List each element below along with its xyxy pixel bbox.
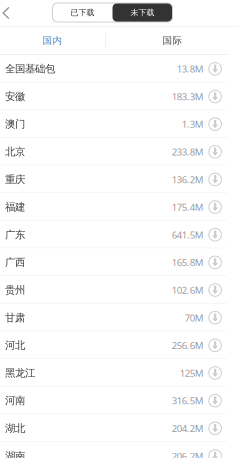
- button[interactable]: 河北: [0, 331, 239, 359]
- staticText: 256.6M: [172, 339, 204, 352]
- staticText: 175.4M: [172, 200, 204, 214]
- staticText: 甘肃: [5, 311, 25, 324]
- button[interactable]: 重庆: [0, 166, 239, 193]
- staticText: 黑龙江: [5, 366, 35, 379]
- staticText: 102.6M: [172, 283, 204, 297]
- staticText: 贵州: [5, 283, 25, 297]
- button[interactable]: 未下载: [112, 3, 172, 22]
- button[interactable]: 河南: [0, 387, 239, 414]
- staticText: 1.3M: [182, 118, 204, 131]
- staticText: 国内: [42, 34, 62, 47]
- staticText: 165.8M: [172, 256, 204, 269]
- staticText: 已下载: [70, 7, 94, 18]
- staticText: 全国基础包: [5, 62, 55, 75]
- button[interactable]: 黑龙江: [0, 359, 239, 387]
- button[interactable]: 福建: [0, 193, 239, 221]
- button[interactable]: 湖南: [0, 442, 239, 458]
- button[interactable]: 湖北: [0, 414, 239, 442]
- button[interactable]: 全国基础包: [0, 55, 239, 83]
- staticText: 136.2M: [172, 173, 204, 186]
- staticText: 福建: [5, 200, 25, 214]
- staticText: 641.5M: [172, 228, 204, 241]
- staticText: 澳门: [5, 118, 25, 131]
- button[interactable]: 贵州: [0, 276, 239, 304]
- staticText: 未下载: [130, 7, 154, 18]
- staticText: 河南: [5, 394, 25, 407]
- button[interactable]: 广东: [0, 221, 239, 248]
- staticText: 13.8M: [177, 62, 204, 75]
- button[interactable]: 广西: [0, 249, 239, 276]
- staticText: 湖北: [5, 422, 25, 435]
- button[interactable]: 国际: [106, 27, 239, 54]
- staticText: 北京: [5, 145, 25, 158]
- button[interactable]: 已下载: [52, 3, 112, 22]
- staticText: 国际: [162, 34, 182, 47]
- staticText: 204.2M: [172, 422, 204, 435]
- staticText: 河北: [5, 339, 25, 352]
- staticText: 233.8M: [172, 145, 204, 158]
- staticText: 206.2M: [172, 449, 204, 458]
- staticText: 重庆: [5, 173, 25, 186]
- button[interactable]: 澳门: [0, 110, 239, 138]
- button[interactable]: 甘肃: [0, 304, 239, 331]
- staticText: 安徽: [5, 90, 25, 103]
- staticText: 183.3M: [172, 90, 204, 103]
- button[interactable]: Back: [0, 0, 12, 26]
- staticText: 湖南: [5, 449, 25, 458]
- staticText: 316.5M: [172, 394, 204, 407]
- staticText: 广西: [5, 256, 25, 269]
- button[interactable]: 国内: [0, 27, 105, 54]
- staticText: 广东: [5, 228, 25, 241]
- button[interactable]: 北京: [0, 138, 239, 165]
- button[interactable]: 安徽: [0, 83, 239, 110]
- staticText: 70M: [185, 311, 204, 324]
- staticText: 125M: [180, 366, 204, 379]
